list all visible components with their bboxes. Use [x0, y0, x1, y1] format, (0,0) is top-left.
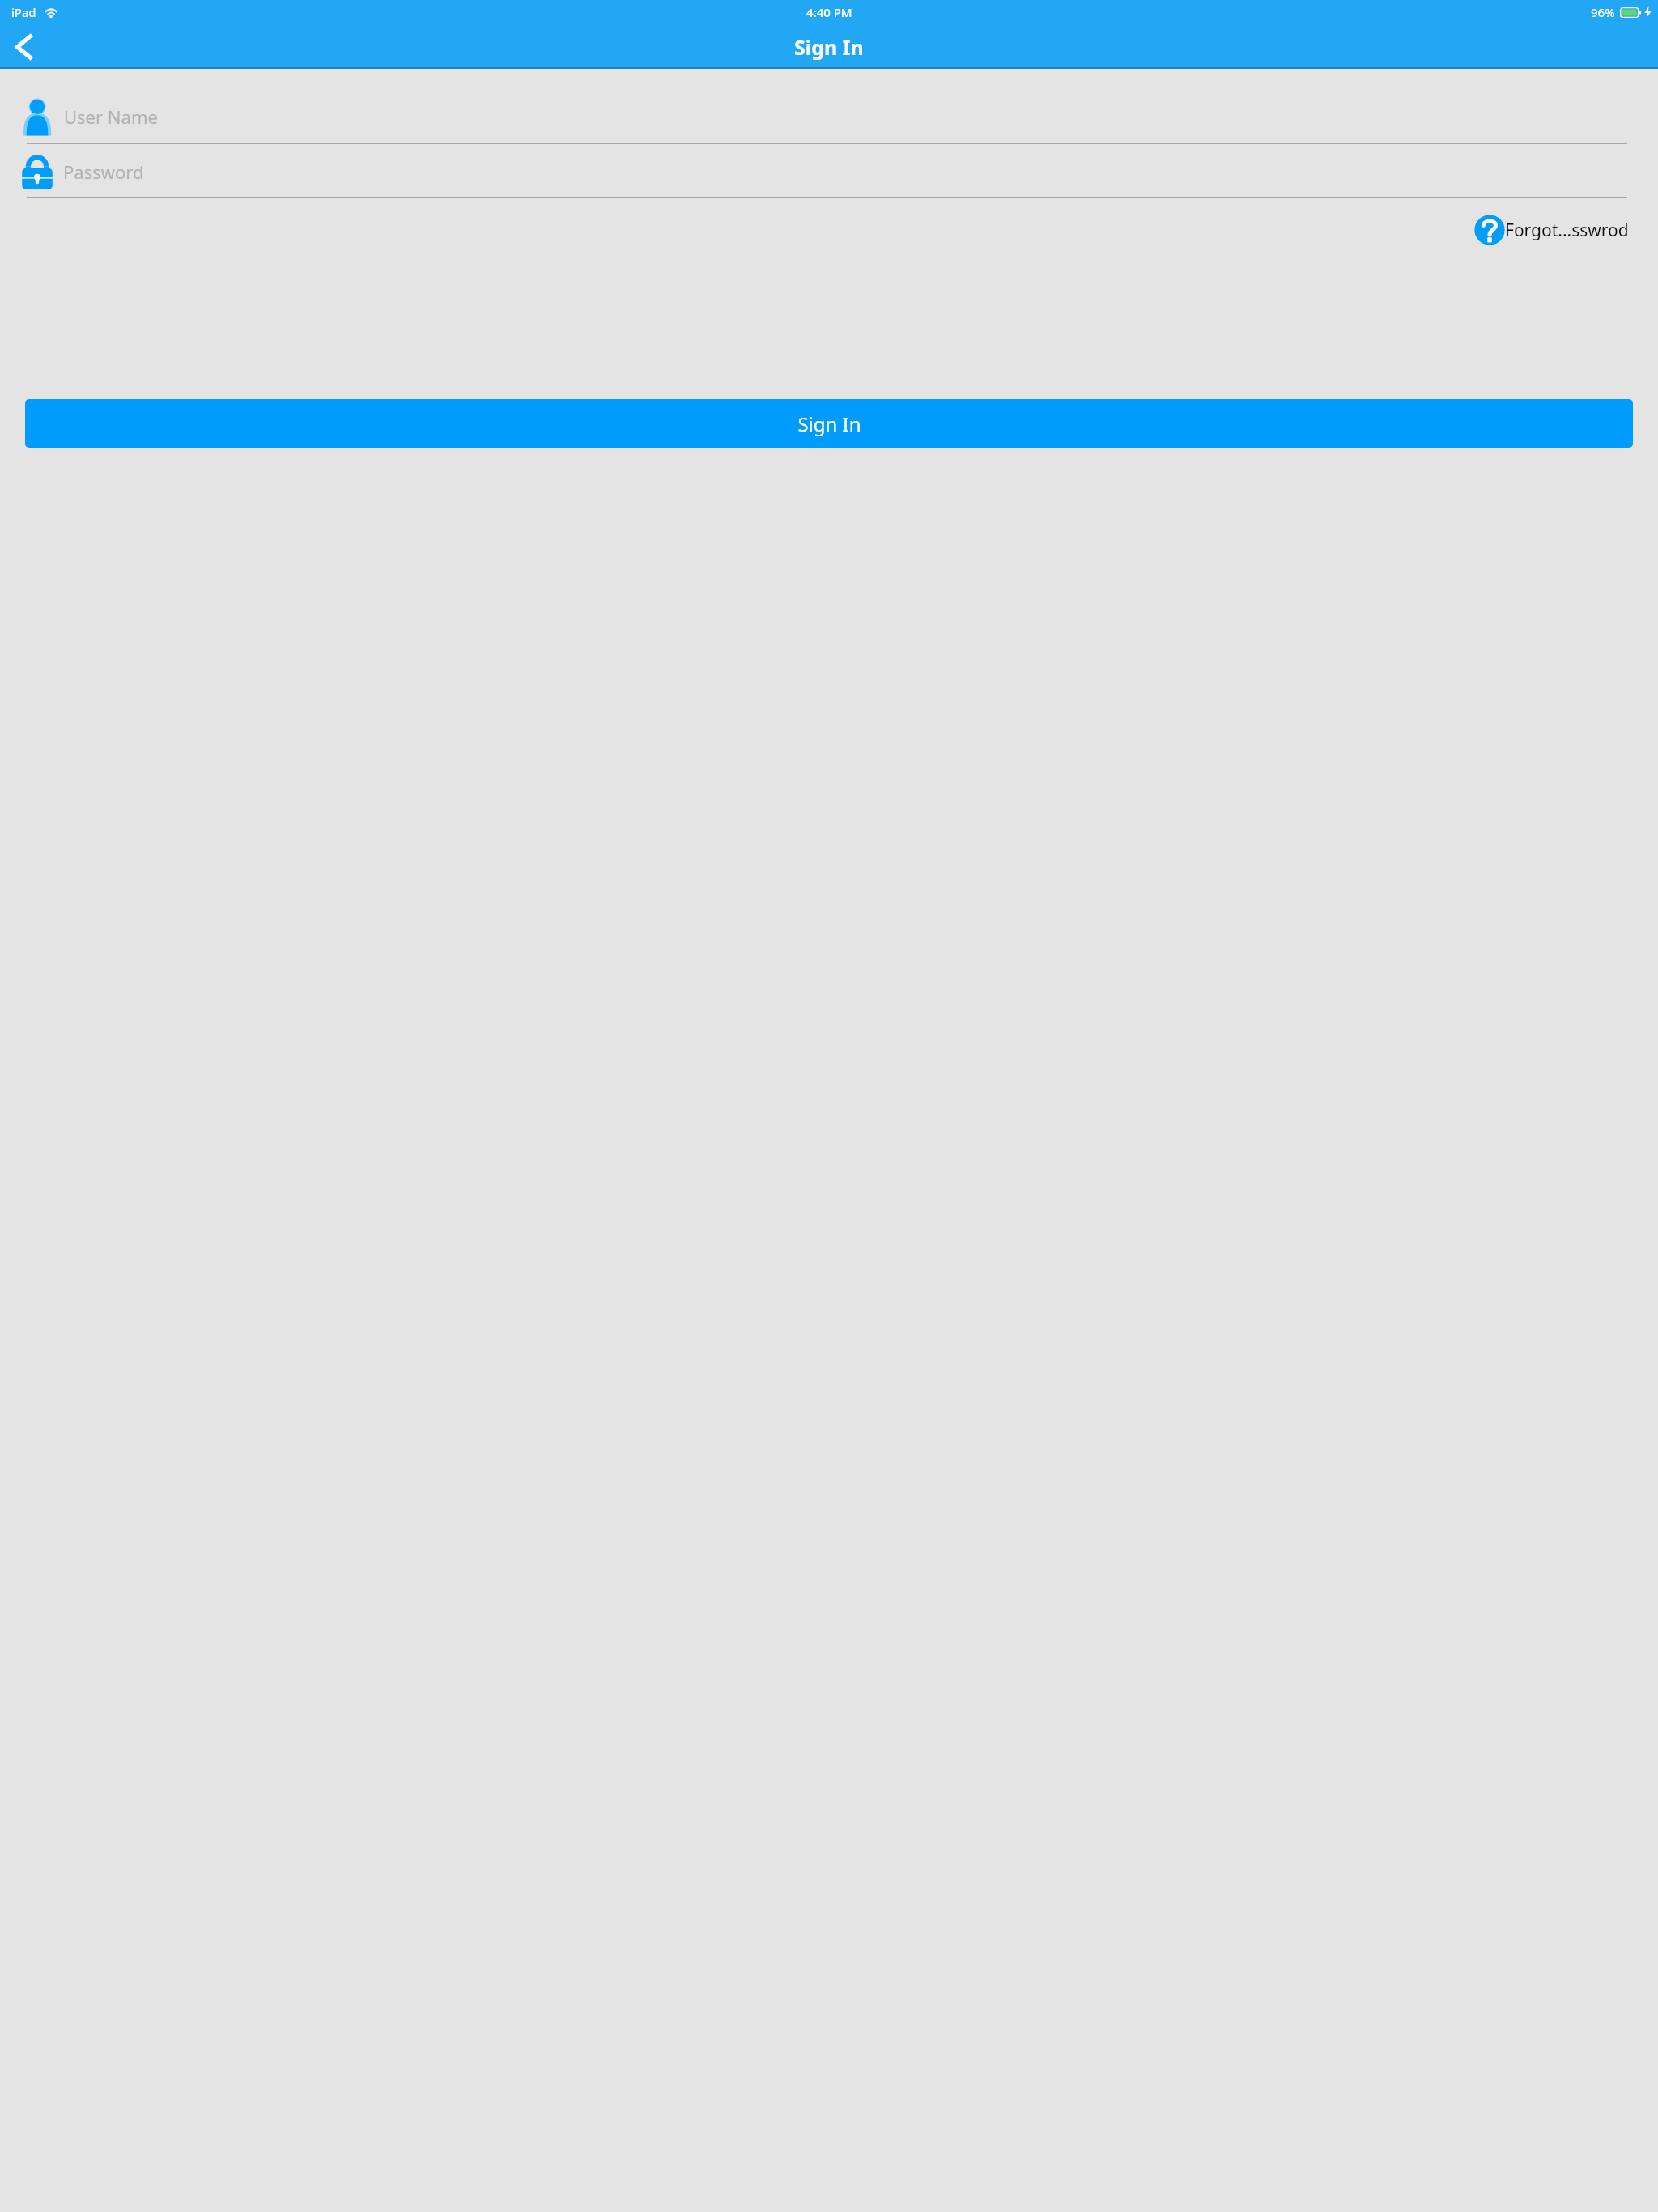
staticText: iPad: [11, 4, 36, 20]
staticText: Sign In: [794, 33, 864, 61]
staticText: User Name: [64, 104, 158, 129]
button[interactable]: Back: [5, 28, 42, 66]
staticText: 96%: [1591, 4, 1615, 20]
button[interactable]: Forgot...sswrod: [1474, 215, 1629, 245]
staticText: Sign In: [797, 410, 861, 437]
staticText: Password: [63, 160, 144, 184]
staticText: Forgot...sswrod: [1505, 219, 1629, 242]
button[interactable]: Sign In: [25, 399, 1633, 448]
staticText: 4:40 PM: [806, 4, 852, 20]
button[interactable]: Password: [0, 144, 1658, 198]
button[interactable]: User Name: [0, 89, 1658, 144]
